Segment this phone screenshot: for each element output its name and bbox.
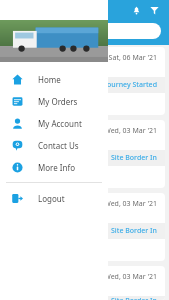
button[interactable]: Wed, 03 Mar '21 <box>4 266 165 300</box>
staticText: Contact Us <box>38 140 79 151</box>
staticText: Site Border In <box>111 296 157 300</box>
staticText: Wed, 03 Mar '21 <box>4 126 157 136</box>
staticText: Wed, 03 Mar '21 <box>4 199 157 209</box>
button[interactable]: Notifications <box>127 1 145 19</box>
button[interactable]: Search order <box>8 23 161 39</box>
button[interactable]: Wed, 03 Mar '21 <box>4 193 165 261</box>
button[interactable]: My Orders <box>0 90 108 112</box>
staticText: More Info <box>38 162 76 173</box>
staticText: Home <box>38 74 61 85</box>
staticText: Journey Started <box>105 80 157 90</box>
button[interactable]: Wed, 03 Mar '21 <box>4 120 165 188</box>
button[interactable]: Sat, 06 Mar '21 <box>4 47 165 115</box>
staticText: Logout <box>38 193 65 204</box>
staticText: Sat, 06 Mar '21 <box>4 53 157 63</box>
button[interactable]: Logout <box>0 187 108 209</box>
button[interactable]: Home <box>0 68 108 90</box>
staticText: Wed, 03 Mar '21 <box>4 272 157 282</box>
staticText: My Orders <box>38 96 78 107</box>
button[interactable]: More Info <box>0 156 108 178</box>
button[interactable]: My Account <box>0 112 108 134</box>
button[interactable]: Contact Us <box>0 134 108 156</box>
staticText: Site Border In <box>111 153 157 163</box>
staticText: Site Border In <box>111 226 157 236</box>
staticText: Search order <box>14 26 57 36</box>
button[interactable]: Filter <box>145 1 163 19</box>
staticText: My Account <box>38 118 82 129</box>
